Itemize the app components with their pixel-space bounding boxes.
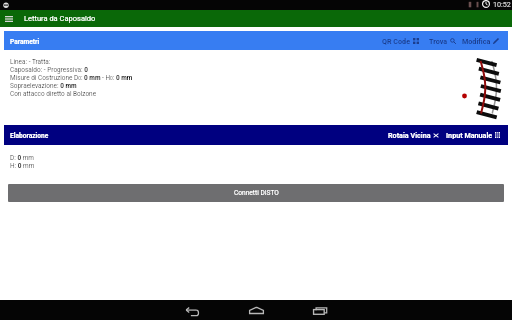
button[interactable]: Rotaia Vicina xyxy=(388,131,439,139)
staticText: Trova xyxy=(429,37,448,45)
staticText: Linea: - Tratta: Caposaldo: - Progressiv… xyxy=(10,58,133,98)
staticText: Elaborazione xyxy=(10,132,49,140)
button[interactable]: Back xyxy=(167,300,217,320)
staticText: QR Code xyxy=(382,37,411,45)
staticText: Parametri xyxy=(10,38,40,46)
button[interactable]: QR Code xyxy=(382,37,419,45)
button[interactable]: Modifica xyxy=(462,37,499,45)
button[interactable]: Connetti DISTO xyxy=(8,184,504,202)
staticText: D: 0 mm H: 0 mm xyxy=(10,154,35,169)
staticText: 10:52 xyxy=(493,0,511,8)
button[interactable]: Input Manuale xyxy=(446,131,500,139)
button[interactable]: Recent apps xyxy=(295,300,345,320)
button[interactable]: Menu xyxy=(0,10,17,27)
staticText: Rotaia Vicina xyxy=(388,131,431,139)
staticText: Modifica xyxy=(462,37,491,45)
button[interactable]: Trova xyxy=(429,37,456,45)
staticText: Input Manuale xyxy=(446,131,493,139)
staticText: Lettura da Caposaldo xyxy=(24,14,96,23)
button[interactable]: Home xyxy=(231,300,281,320)
staticText: Connetti DISTO xyxy=(234,189,279,197)
